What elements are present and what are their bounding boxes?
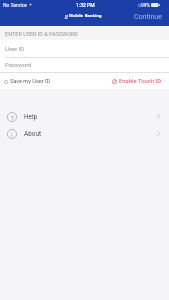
button[interactable]: Enable Touch ID: [112, 78, 162, 85]
button[interactable]: Continue: [134, 13, 162, 21]
button[interactable]: Save my User ID: [4, 78, 51, 85]
staticText: Enable Touch ID: [119, 78, 162, 85]
staticText: No Service: [3, 2, 27, 8]
staticText: Continue: [134, 13, 162, 21]
staticText: 1:32 PM: [76, 2, 95, 8]
staticText: 99%: [141, 2, 151, 8]
staticText: Mobile Banking: [69, 13, 102, 18]
staticText: Save my User ID: [10, 78, 51, 85]
staticText: Help: [24, 113, 38, 121]
staticText: Password: [5, 61, 32, 68]
staticText: i: [11, 131, 13, 138]
staticText: About: [24, 130, 42, 138]
button[interactable]: Password: [0, 57, 169, 72]
staticText: ?: [11, 114, 14, 121]
button[interactable]: i: [0, 125, 169, 142]
staticText: ENTER USER ID & PASSWORD: [5, 31, 78, 37]
button[interactable]: ?: [0, 108, 169, 125]
staticText: User ID: [5, 45, 25, 52]
button[interactable]: User ID: [0, 40, 169, 57]
